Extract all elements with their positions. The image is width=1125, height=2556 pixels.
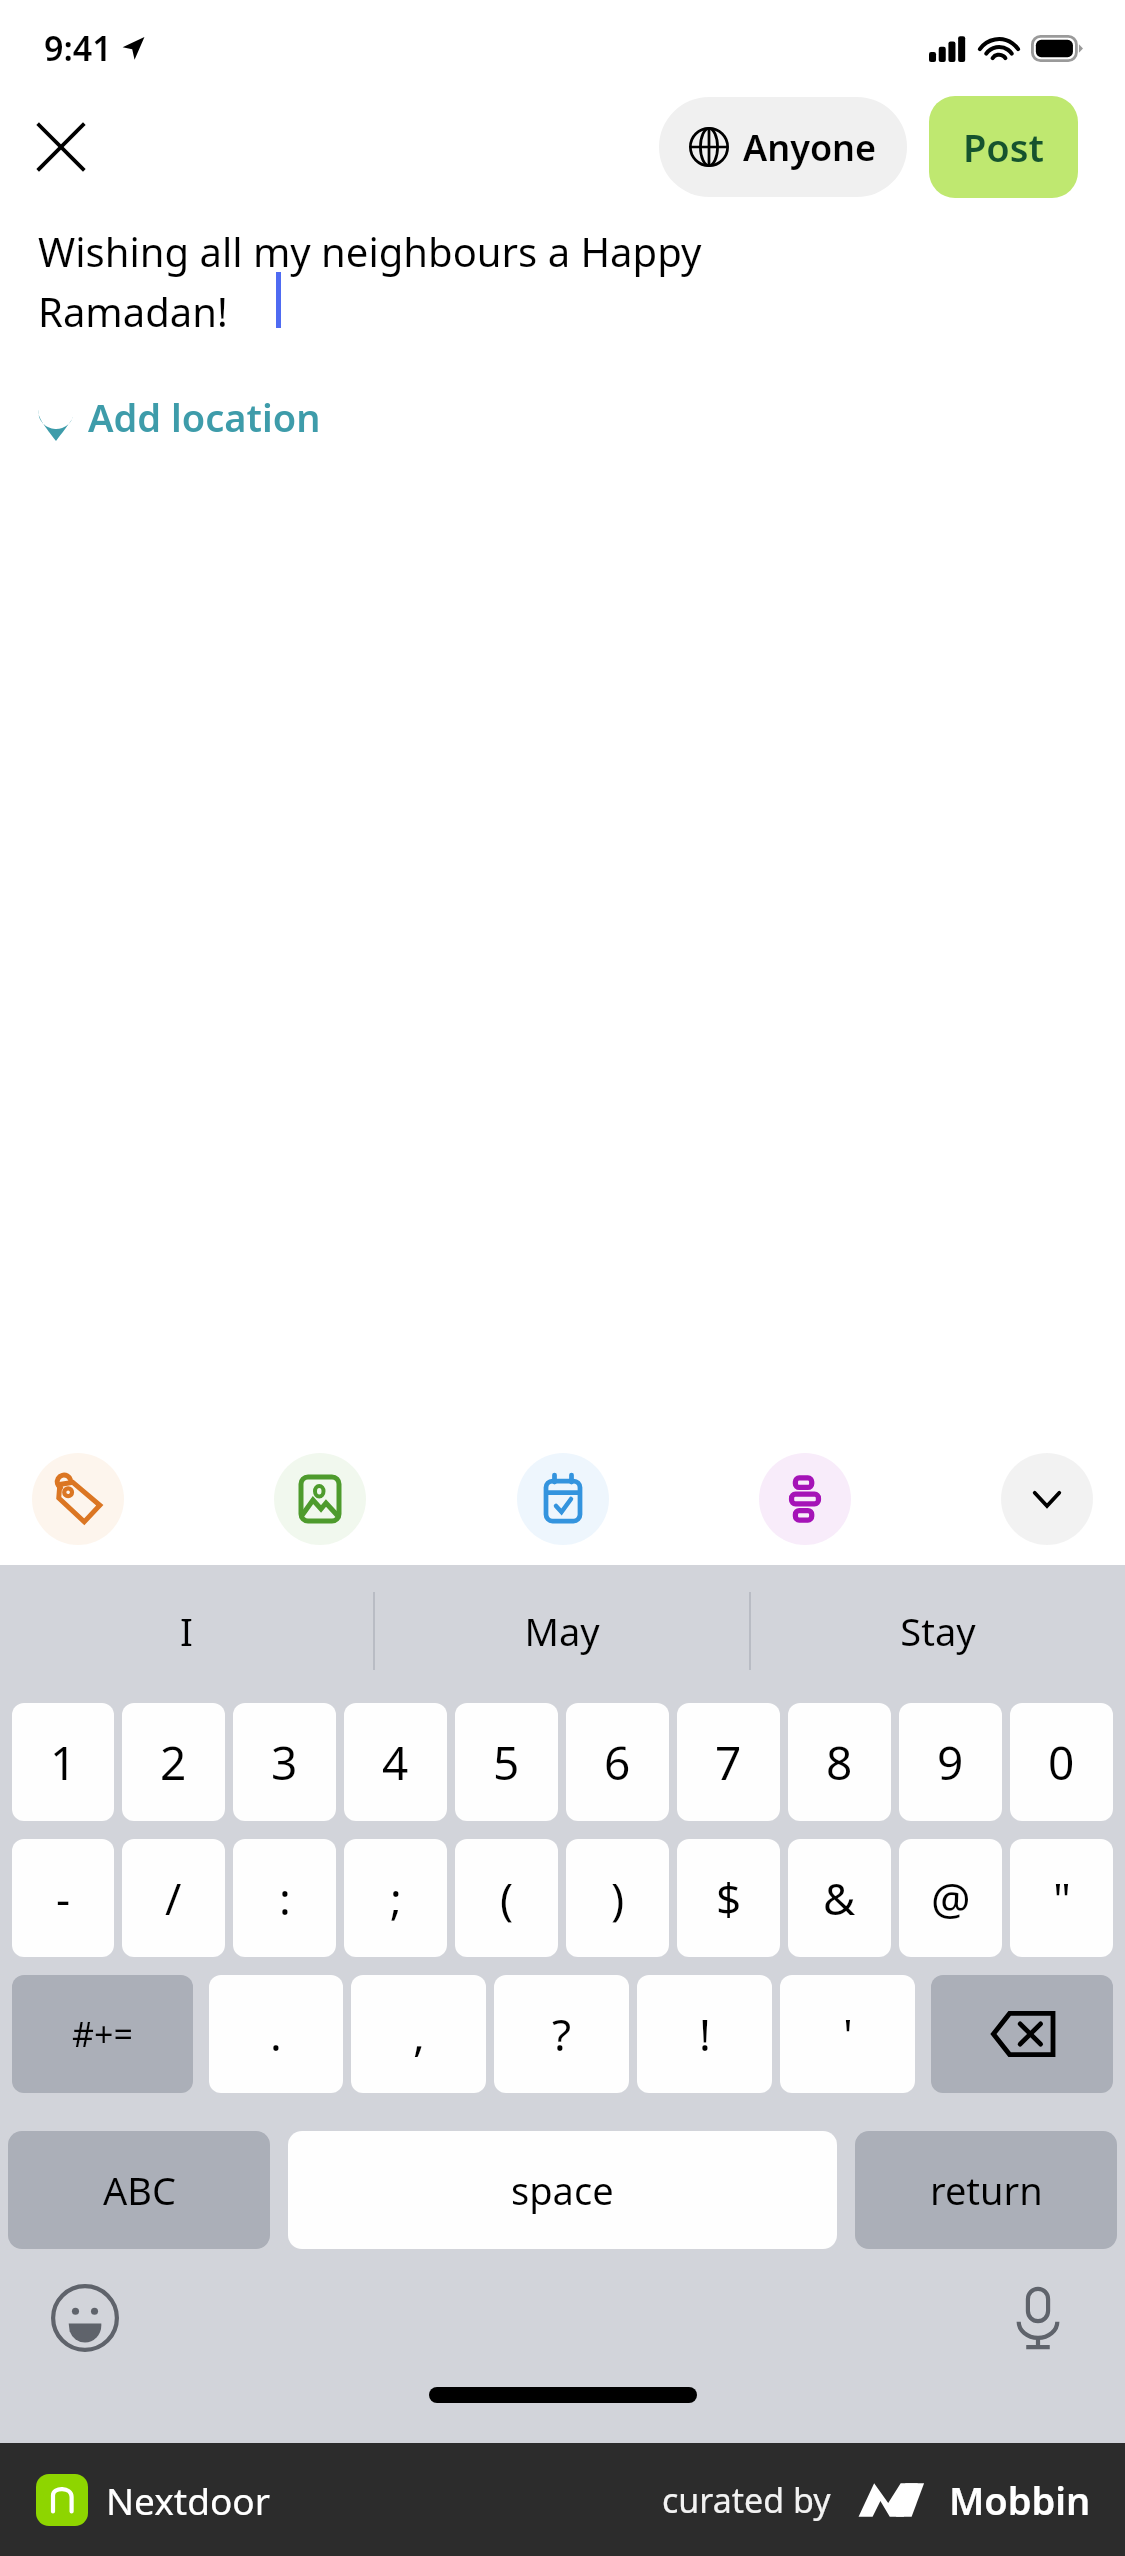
staticText: ! — [699, 2004, 711, 2064]
button[interactable]: , — [351, 1975, 486, 2093]
staticText: , — [413, 2004, 425, 2064]
button[interactable]: / — [122, 1839, 225, 1957]
staticText: / — [165, 1868, 182, 1928]
staticText: curated by — [662, 2477, 831, 2523]
button[interactable]: 6 — [566, 1703, 669, 1821]
button[interactable]: I — [0, 1565, 373, 1697]
button[interactable]: 4 — [344, 1703, 447, 1821]
staticText: 9:41 — [44, 25, 112, 71]
staticText: Wishing all my neighbours a Happy Ramada… — [38, 224, 702, 339]
button[interactable]: Add tag — [32, 1453, 124, 1545]
button[interactable]: ( — [455, 1839, 558, 1957]
staticText: space — [511, 2164, 614, 2216]
button[interactable]: 1 — [12, 1703, 114, 1821]
button[interactable]: Backspace — [931, 1975, 1113, 2093]
button[interactable]: $ — [677, 1839, 780, 1957]
staticText: 2 — [160, 1731, 187, 1794]
staticText: 7 — [715, 1731, 742, 1794]
staticText: $ — [716, 1868, 742, 1928]
staticText: ( — [500, 1868, 514, 1928]
staticText: 9 — [937, 1731, 964, 1794]
staticText: 6 — [604, 1731, 631, 1794]
staticText: . — [270, 2004, 282, 2064]
button[interactable]: ABC — [8, 2131, 270, 2249]
button[interactable]: & — [788, 1839, 891, 1957]
button[interactable]: May — [375, 1565, 749, 1697]
staticText: & — [823, 1868, 856, 1928]
staticText: " — [1053, 1868, 1071, 1928]
button[interactable]: ) — [566, 1839, 669, 1957]
staticText: - — [56, 1868, 71, 1928]
staticText: Add location — [88, 391, 321, 443]
button[interactable]: ' — [780, 1975, 915, 2093]
button[interactable]: More options — [1001, 1453, 1093, 1545]
staticText: return — [930, 2164, 1043, 2216]
staticText: @ — [931, 1868, 971, 1928]
button[interactable]: Add event — [517, 1453, 609, 1545]
staticText: ) — [611, 1868, 625, 1928]
button[interactable]: return — [855, 2131, 1117, 2249]
button[interactable]: Close — [22, 108, 100, 186]
staticText: ' — [843, 2004, 853, 2064]
button[interactable]: : — [233, 1839, 336, 1957]
button[interactable]: Add location — [32, 385, 337, 449]
staticText: Stay — [900, 1605, 976, 1657]
staticText: 0 — [1048, 1731, 1075, 1794]
button[interactable]: ; — [344, 1839, 447, 1957]
button[interactable]: @ — [899, 1839, 1002, 1957]
button[interactable]: Stay — [751, 1565, 1125, 1697]
button[interactable]: 8 — [788, 1703, 891, 1821]
staticText: Post — [963, 121, 1044, 173]
button[interactable]: #+= — [12, 1975, 193, 2093]
staticText: ; — [390, 1868, 402, 1928]
button[interactable]: 2 — [122, 1703, 225, 1821]
staticText: Anyone — [743, 123, 877, 172]
staticText: 5 — [493, 1731, 520, 1794]
button[interactable]: 3 — [233, 1703, 336, 1821]
staticText: ABC — [103, 2164, 176, 2216]
staticText: 4 — [382, 1731, 409, 1794]
staticText: I — [180, 1605, 193, 1657]
button[interactable]: " — [1010, 1839, 1113, 1957]
staticText: May — [524, 1605, 600, 1657]
staticText: #+= — [72, 2011, 133, 2057]
button[interactable]: ? — [494, 1975, 629, 2093]
staticText: Mobbin — [949, 2474, 1091, 2526]
button[interactable]: ! — [637, 1975, 772, 2093]
button[interactable]: 5 — [455, 1703, 558, 1821]
staticText: 1 — [50, 1731, 77, 1794]
staticText: Nextdoor — [106, 2475, 270, 2525]
staticText: : — [279, 1868, 291, 1928]
staticText: 3 — [271, 1731, 298, 1794]
button[interactable]: - — [12, 1839, 114, 1957]
button[interactable]: Anyone — [659, 97, 907, 197]
button[interactable]: Post — [929, 96, 1078, 198]
button[interactable]: Add photo — [274, 1453, 366, 1545]
button[interactable]: 9 — [899, 1703, 1002, 1821]
staticText: 8 — [826, 1731, 853, 1794]
button[interactable]: 0 — [1010, 1703, 1113, 1821]
button[interactable]: space — [288, 2131, 837, 2249]
button[interactable]: . — [209, 1975, 343, 2093]
button[interactable]: Add poll — [759, 1453, 851, 1545]
staticText: ? — [552, 2004, 572, 2064]
button[interactable]: 7 — [677, 1703, 780, 1821]
button[interactable]: Emoji — [48, 2281, 122, 2355]
button[interactable]: Dictation — [1001, 2281, 1075, 2355]
